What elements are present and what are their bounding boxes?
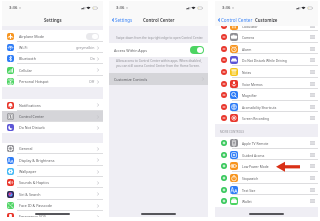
button[interactable]: Remove Camera [221, 34, 227, 40]
other: Reorder Low Power Mode [310, 164, 315, 168]
staticText: Voice Memos [242, 82, 263, 86]
staticText: Sounds & Haptics [19, 180, 49, 185]
staticText: Settings [115, 17, 133, 23]
button[interactable]: Remove Do Not Disturb While Driving [221, 57, 227, 63]
button[interactable]: Wi-Fi [2, 42, 103, 53]
other: Reorder Screen Recording [310, 116, 315, 120]
button[interactable]: Cellular [2, 64, 103, 76]
button[interactable]: Face ID & Passcode [2, 200, 103, 211]
button[interactable]: Add Wallet [221, 198, 227, 204]
other: Reorder Magnifier [310, 93, 315, 97]
staticText: Alarm [242, 47, 252, 51]
button[interactable]: Remove Calculator [221, 23, 227, 29]
button[interactable]: Settings [112, 15, 133, 25]
staticText: Accessibility Shortcuts [242, 105, 277, 109]
staticText: Camera [242, 35, 255, 39]
button[interactable]: Remove Magnifier [215, 89, 318, 101]
staticText: Emergency SOS [19, 214, 46, 217]
other: Reorder Do Not Disturb While Driving [310, 58, 315, 62]
button[interactable]: Add Apple TV Remote [215, 137, 318, 149]
button[interactable]: Remove Screen Recording [221, 115, 227, 121]
staticText: Display & Brightness [19, 158, 55, 163]
other: Reorder Calculator [310, 24, 315, 28]
staticText: Stopwatch [242, 176, 259, 180]
staticText: Do Not Disturb While Driving [242, 58, 287, 62]
button[interactable]: Display & Brightness [2, 154, 103, 166]
other: Reorder Guided Access [310, 153, 315, 157]
button[interactable]: Add Apple TV Remote [221, 140, 227, 146]
staticText: Customize Controls [114, 77, 148, 82]
other: Reorder Voice Memos [310, 82, 315, 86]
staticText: Allow access to Control Center within ap… [116, 59, 203, 68]
button[interactable]: Add Stopwatch [221, 175, 227, 181]
staticText: Wallet [242, 199, 252, 203]
button[interactable]: Add Guided Access [215, 149, 318, 160]
button[interactable]: Remove Notes [215, 66, 318, 78]
button[interactable]: General [2, 143, 103, 154]
staticText: Control Center [143, 17, 175, 23]
button[interactable]: Remove Calculator [215, 20, 318, 31]
button[interactable]: Control Center [2, 111, 103, 122]
staticText: On [90, 56, 95, 61]
button[interactable]: Emergency SOS [2, 211, 103, 217]
staticText: Wi-Fi [19, 45, 28, 50]
button[interactable]: Remove Screen Recording [215, 112, 318, 124]
button[interactable]: Notifications [2, 99, 103, 111]
button[interactable]: Remove Do Not Disturb While Driving [215, 54, 318, 66]
staticText: Personal Hotspot [19, 79, 49, 84]
staticText: Guided Access [242, 153, 265, 157]
other: Reorder Text Size [310, 188, 315, 192]
button[interactable]: Personal Hotspot [2, 76, 103, 87]
button[interactable]: Add Low Power Mode [221, 163, 227, 169]
staticText: Airplane Mode [19, 34, 45, 39]
button[interactable]: Remove Alarm [221, 46, 227, 52]
other: Reorder Stopwatch [310, 176, 315, 180]
button[interactable]: Add Text Size [215, 184, 318, 195]
staticText: Control Center [221, 17, 253, 23]
staticText: General [19, 146, 33, 151]
button[interactable]: Add Guided Access [221, 152, 227, 158]
staticText: Text Size [242, 188, 256, 192]
staticText: Calculator [242, 24, 258, 28]
other: Reorder Notes [310, 70, 315, 74]
button[interactable]: Wallpaper [2, 166, 103, 177]
staticText: Off [89, 79, 95, 84]
staticText: Wallpaper [19, 169, 37, 174]
staticText: Cellular [19, 68, 32, 73]
button[interactable]: Bluetooth [2, 53, 103, 64]
button[interactable]: Remove Alarm [215, 43, 318, 54]
staticText: MORE CONTROLS [220, 130, 245, 134]
button[interactable]: Add Low Power Mode [215, 160, 318, 172]
staticText: Apple TV Remote [242, 141, 269, 145]
other: Reorder Apple TV Remote [310, 141, 315, 145]
staticText: greymalkin [76, 45, 95, 50]
staticText: Face ID & Passcode [19, 203, 53, 208]
button[interactable]: Remove Accessibility Shortcuts [221, 104, 227, 110]
other: Reorder Camera [310, 35, 315, 39]
other: Reorder Alarm [310, 47, 315, 51]
staticText: Access Within Apps [114, 48, 147, 53]
button[interactable]: Remove Voice Memos [221, 81, 227, 87]
staticText: 3:36 [222, 5, 231, 11]
button[interactable]: Sounds & Haptics [2, 177, 103, 188]
staticText: Swipe down from the top-right edge to op… [116, 36, 204, 40]
button[interactable]: Add Stopwatch [215, 172, 318, 184]
button[interactable]: Remove Voice Memos [215, 78, 318, 89]
button[interactable]: Add Text Size [221, 187, 227, 193]
other: Reorder Accessibility Shortcuts [310, 105, 315, 109]
button[interactable]: Customize Controls [109, 73, 208, 85]
button[interactable]: Remove Accessibility Shortcuts [215, 101, 318, 112]
staticText: Siri & Search [19, 192, 41, 197]
button[interactable]: Remove Camera [215, 31, 318, 43]
button[interactable]: Siri & Search [2, 188, 103, 200]
button[interactable]: Do Not Disturb [2, 122, 103, 133]
button[interactable]: Add Wallet [215, 195, 318, 207]
staticText: Settings [44, 17, 62, 23]
button[interactable]: Control Center [218, 15, 253, 25]
staticText: Notes [242, 70, 252, 74]
staticText: 3:36 [9, 5, 18, 11]
button[interactable]: Airplane Mode [2, 30, 103, 42]
button[interactable]: Remove Magnifier [221, 92, 227, 98]
button[interactable]: Access Within Apps [109, 43, 208, 57]
button[interactable]: Remove Notes [221, 69, 227, 75]
